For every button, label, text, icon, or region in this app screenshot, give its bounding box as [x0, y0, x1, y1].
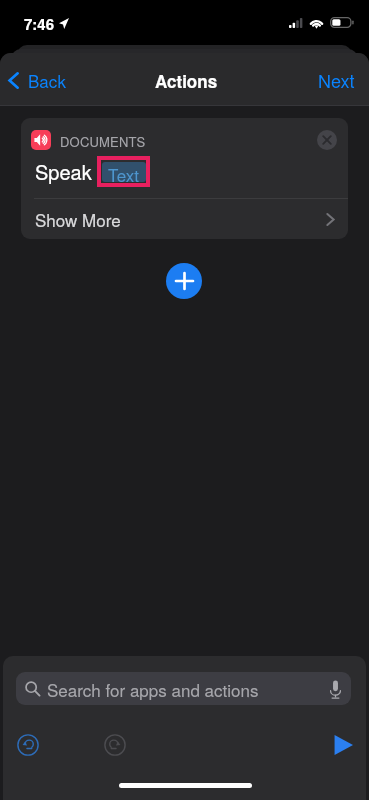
button[interactable]: Redo [101, 731, 129, 759]
button[interactable]: Back [0, 60, 78, 100]
button[interactable]: Play [330, 732, 356, 758]
button[interactable]: Next [304, 59, 369, 101]
staticText: Search for apps and actions [47, 677, 259, 701]
button[interactable]: Search for apps and actions [16, 672, 351, 705]
button[interactable]: Remove action [317, 130, 337, 150]
staticText: Speak [35, 157, 92, 186]
button[interactable]: Add action [166, 263, 202, 299]
button[interactable]: Voice search [328, 679, 342, 699]
button[interactable]: Text [97, 156, 150, 187]
button[interactable]: Undo [14, 731, 42, 759]
staticText: Show More [35, 207, 121, 231]
staticText: Text [108, 162, 140, 182]
staticText: Actions [155, 69, 218, 93]
staticText: DOCUMENTS [60, 132, 146, 151]
button[interactable]: Show More [21, 199, 348, 239]
staticText: 7:46 [24, 13, 55, 34]
staticText: Next [318, 67, 355, 93]
staticText: Back [28, 68, 66, 92]
button[interactable]: DOCUMENTS [21, 118, 348, 239]
